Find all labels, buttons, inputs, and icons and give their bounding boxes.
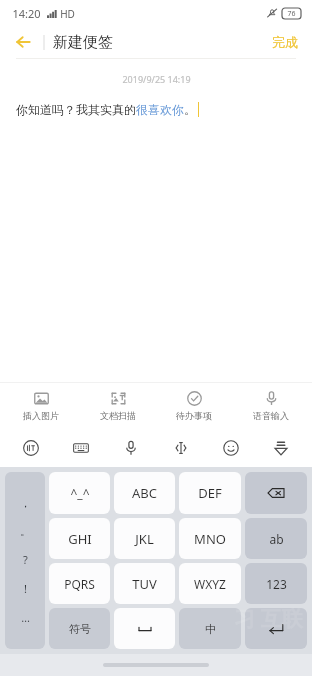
button[interactable]: Enter	[245, 608, 307, 649]
staticText: 待办事项	[176, 410, 212, 421]
button[interactable]: 中	[179, 608, 241, 649]
button[interactable]: 插入图片	[5, 387, 77, 425]
button[interactable]: Back	[8, 27, 38, 57]
staticText: ^_^	[70, 485, 90, 501]
staticText: 中	[205, 622, 216, 636]
button[interactable]: Keyboard layout	[62, 429, 100, 467]
staticText: 完成	[272, 34, 298, 50]
staticText: DEF	[198, 484, 222, 502]
button[interactable]: 符号	[49, 608, 110, 649]
staticText: JKL	[135, 530, 154, 548]
button[interactable]: 语音输入	[235, 387, 307, 425]
button[interactable]: JKL	[114, 518, 175, 559]
staticText: !	[24, 581, 27, 596]
staticText: WXYZ	[194, 576, 226, 592]
button[interactable]: 完成	[258, 29, 312, 55]
button[interactable]: Input method	[12, 429, 50, 467]
button[interactable]: MNO	[179, 518, 241, 559]
button[interactable]: ABC	[114, 472, 175, 514]
staticText: ab	[269, 531, 284, 547]
button[interactable]: 待办事项	[158, 387, 230, 425]
button[interactable]: 文档扫描	[82, 387, 154, 425]
button[interactable]: Delete	[245, 472, 307, 514]
staticText: 。	[20, 524, 31, 538]
button[interactable]: Emoji	[212, 429, 250, 467]
button[interactable]: WXYZ	[179, 563, 241, 604]
staticText: 123	[266, 576, 287, 592]
staticText: GHI	[68, 530, 92, 548]
staticText: 插入图片	[23, 410, 59, 421]
staticText: 习 互联	[234, 604, 303, 633]
button[interactable]: 123	[245, 563, 307, 604]
staticText: 符号	[69, 622, 91, 636]
button[interactable]: ^_^	[49, 472, 110, 514]
staticText: MNO	[194, 530, 226, 548]
button[interactable]: Voice input	[112, 429, 150, 467]
button[interactable]: Hide keyboard	[262, 429, 300, 467]
staticText: 14:20	[12, 6, 41, 21]
staticText: 你知道吗？我其实真的很喜欢你。	[16, 102, 196, 117]
button[interactable]: TUV	[114, 563, 175, 604]
staticText: ABC	[132, 484, 157, 502]
staticText: 新建便签	[53, 33, 113, 52]
staticText: …	[21, 610, 30, 625]
button[interactable]: ab	[245, 518, 307, 559]
staticText: ?	[23, 552, 28, 567]
button[interactable]: ，	[5, 472, 45, 649]
button[interactable]: Move cursor	[162, 429, 200, 467]
staticText: ，	[20, 496, 31, 510]
staticText: HD	[60, 7, 75, 21]
button[interactable]: Space	[114, 608, 175, 649]
staticText: TUV	[132, 575, 157, 593]
staticText: PQRS	[64, 576, 95, 592]
staticText: 2019/9/25 14:19	[122, 73, 191, 85]
button[interactable]: PQRS	[49, 563, 110, 604]
staticText: 文档扫描	[100, 410, 136, 421]
button[interactable]: DEF	[179, 472, 241, 514]
staticText: 76	[287, 9, 296, 19]
staticText: 语音输入	[253, 410, 289, 421]
button[interactable]: GHI	[49, 518, 110, 559]
